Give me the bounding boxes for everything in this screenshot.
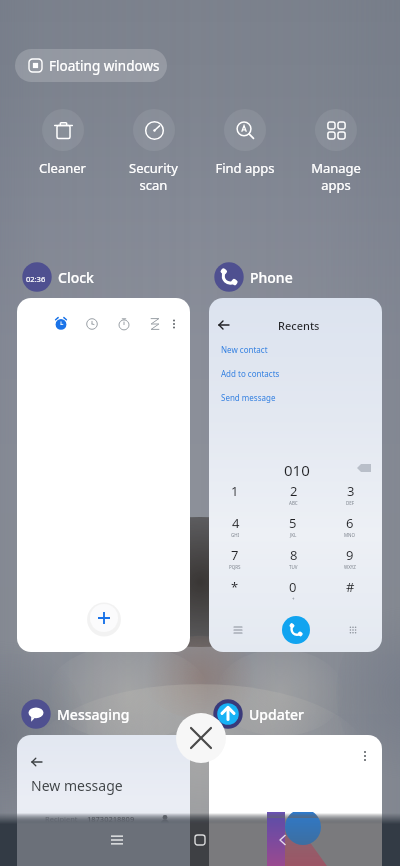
button[interactable]: Find apps [199, 109, 290, 177]
button[interactable]: Manage apps [290, 109, 381, 194]
button[interactable]: # [336, 578, 364, 604]
staticText: Add to contacts [221, 368, 280, 379]
button[interactable]: New message [17, 735, 190, 866]
staticText: Phone [250, 268, 293, 287]
staticText: 6 [346, 514, 354, 532]
staticText: Floating windows [49, 57, 160, 75]
button[interactable]: 5 [279, 514, 307, 540]
staticText: JKL [290, 532, 297, 538]
staticText: 02:36 [26, 274, 46, 284]
staticText: PQRS [229, 564, 241, 570]
button[interactable]: Back [241, 813, 324, 866]
staticText: TUV [289, 564, 298, 570]
staticText: * [231, 578, 239, 596]
staticText: 010 [284, 460, 310, 480]
staticText: MNO [344, 532, 356, 538]
button[interactable]: 2 [279, 482, 307, 508]
staticText: Recipient [45, 814, 78, 824]
button[interactable]: Phone [214, 262, 293, 292]
staticText: + [292, 596, 295, 602]
button[interactable]: Close all [176, 713, 226, 763]
button[interactable]: Recents [209, 298, 382, 652]
staticText: 2 [290, 482, 298, 500]
button[interactable]: 3 [336, 482, 364, 508]
button[interactable]: Updater [213, 699, 305, 729]
button[interactable]: Security scan [108, 109, 199, 194]
button[interactable]: 1 [221, 482, 249, 508]
button[interactable]: 8 [279, 546, 307, 572]
button[interactable]: 4 [221, 514, 249, 540]
staticText: 5 [289, 514, 297, 532]
staticText: New contact [221, 344, 268, 355]
staticText: 4 [232, 514, 240, 532]
staticText: 1 [231, 482, 239, 500]
staticText: Manage apps [311, 159, 361, 194]
button[interactable]: * [221, 578, 249, 604]
staticText: Clock [58, 268, 94, 287]
button[interactable]: Cleaner [17, 109, 108, 177]
staticText: 0 [289, 578, 297, 596]
staticText: Cleaner [39, 159, 86, 177]
staticText: 3 [347, 482, 355, 500]
button[interactable]: Recents [76, 813, 158, 866]
button[interactable]: Home [158, 813, 241, 866]
staticText: 8 [290, 546, 298, 564]
staticText: 18730218809 [87, 814, 135, 824]
button[interactable]: 7 [221, 546, 249, 572]
staticText: Recents [278, 318, 320, 333]
button[interactable]: Clock [22, 262, 94, 292]
staticText: Updater [249, 705, 305, 724]
staticText: 9 [346, 546, 354, 564]
button[interactable]: 6 [336, 514, 364, 540]
staticText: ABC [289, 500, 298, 506]
staticText: GHI [231, 532, 240, 538]
button[interactable]: 9 [336, 546, 364, 572]
staticText: New message [31, 776, 123, 795]
button[interactable]: 0 [279, 578, 307, 604]
staticText: DEF [346, 500, 355, 506]
button[interactable] [17, 298, 190, 652]
staticText: WXYZ [344, 564, 356, 570]
button[interactable]: Floating windows [15, 49, 167, 82]
button[interactable] [209, 735, 382, 866]
staticText: # [346, 578, 355, 596]
staticText: Send message [221, 392, 276, 403]
button[interactable]: Messaging [21, 699, 130, 729]
staticText: Messaging [57, 705, 130, 724]
staticText: 7 [231, 546, 239, 564]
staticText: Security scan [129, 159, 178, 194]
staticText: Find apps [215, 159, 275, 177]
